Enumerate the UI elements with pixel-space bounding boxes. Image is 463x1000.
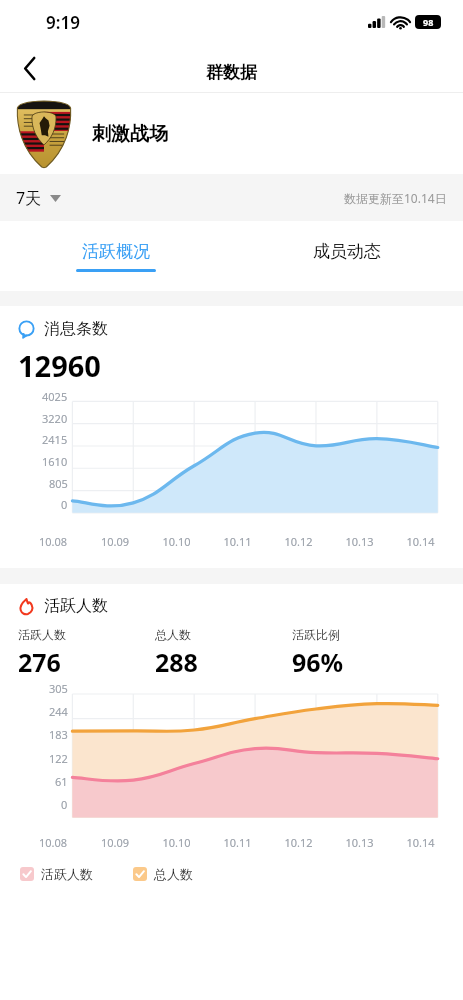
staticText: 2415 (42, 432, 68, 444)
button[interactable]: 活跃人数 (20, 864, 93, 884)
staticText: 活跃比例 (292, 627, 340, 642)
staticText: 122 (49, 751, 68, 763)
staticText: 活跃人数 (44, 596, 108, 616)
button[interactable]: 7天 (16, 187, 61, 209)
staticText: 10.08 (22, 835, 84, 850)
staticText: 12960 (18, 346, 101, 385)
staticText: 98 (423, 16, 434, 28)
staticText: 10.10 (146, 835, 207, 850)
staticText: 10.12 (268, 835, 329, 850)
staticText: 805 (49, 476, 68, 488)
staticText: 10.11 (207, 835, 268, 850)
staticText: 刺激战场 (92, 122, 168, 146)
button[interactable]: 活跃概况 (0, 221, 231, 291)
staticText: 活跃概况 (82, 241, 150, 262)
staticText: 10.13 (329, 835, 390, 850)
staticText: 10.12 (268, 534, 329, 549)
staticText: 成员动态 (313, 241, 381, 262)
staticText: 4025 (42, 389, 68, 401)
staticText: 10.10 (146, 534, 207, 549)
staticText: 群数据 (206, 62, 257, 83)
staticText: 总人数 (154, 866, 193, 882)
button[interactable]: 总人数 (133, 864, 193, 884)
staticText: 244 (49, 704, 68, 716)
staticText: 10.09 (84, 835, 146, 850)
staticText: 276 (18, 645, 61, 679)
button[interactable]: 刺激战场 (0, 93, 463, 174)
staticText: 96% (292, 645, 344, 679)
staticText: 3220 (42, 411, 68, 423)
staticText: 1610 (42, 454, 68, 466)
staticText: 活跃人数 (18, 627, 66, 642)
staticText: 61 (55, 774, 68, 786)
staticText: 消息条数 (44, 319, 108, 339)
staticText: 10.08 (22, 534, 84, 549)
staticText: 7天 (16, 187, 42, 209)
staticText: 数据更新至10.14日 (344, 190, 447, 206)
staticText: 305 (49, 681, 68, 693)
staticText: 0 (61, 497, 68, 509)
staticText: 0 (61, 797, 68, 809)
staticText: 288 (155, 645, 198, 679)
staticText: 183 (49, 727, 68, 739)
staticText: 10.14 (390, 835, 451, 850)
staticText: 活跃人数 (41, 866, 93, 882)
staticText: 10.09 (84, 534, 146, 549)
button[interactable]: Back (10, 48, 50, 88)
staticText: 9:19 (46, 11, 80, 34)
button[interactable]: 成员动态 (231, 221, 463, 291)
staticText: 10.11 (207, 534, 268, 549)
staticText: 10.14 (390, 534, 451, 549)
staticText: 10.13 (329, 534, 390, 549)
staticText: 总人数 (155, 627, 191, 642)
